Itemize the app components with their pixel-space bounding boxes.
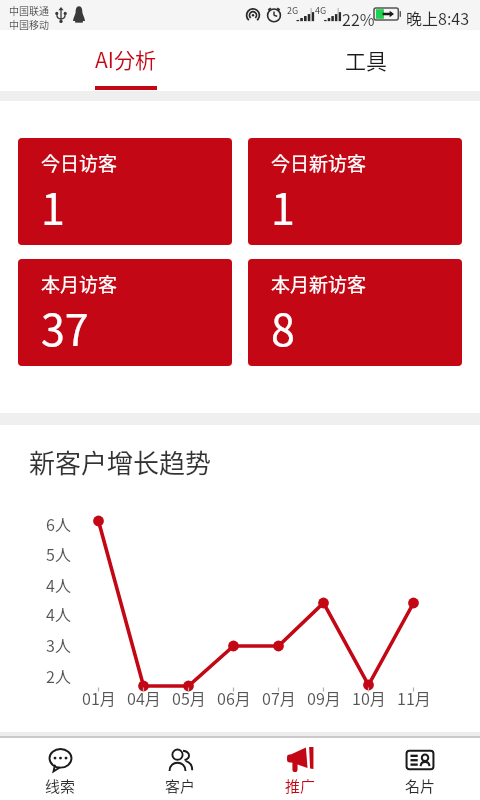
button[interactable]: 今日访客 (18, 138, 232, 245)
staticText: 客户 (165, 775, 196, 797)
staticText: 10月 (352, 686, 386, 709)
staticText: 线索 (45, 775, 76, 797)
staticText: 09月 (307, 686, 341, 709)
staticText: 01月 (82, 686, 116, 709)
staticText: 推广 (285, 775, 316, 797)
staticText: 本月新访客 (271, 270, 367, 298)
button[interactable]: 线索 (0, 738, 120, 800)
staticText: 6人 (46, 512, 71, 535)
button[interactable]: 本月新访客 (248, 259, 462, 366)
staticText: 22% (342, 7, 375, 30)
button[interactable]: 本月访客 (18, 259, 232, 366)
staticText: 新客户增长趋势 (29, 443, 212, 481)
staticText: 中国联通 (9, 3, 49, 17)
staticText: 11月 (397, 686, 431, 709)
staticText: 4人 (46, 602, 71, 625)
staticText: 1 (41, 175, 65, 237)
staticText: 04月 (127, 686, 161, 709)
staticText: 4G (315, 4, 327, 17)
staticText: 本月访客 (41, 270, 118, 298)
button[interactable]: 今日新访客 (248, 138, 462, 245)
staticText: 今日新访客 (271, 149, 367, 177)
staticText: 2G (287, 4, 299, 17)
staticText: 8 (271, 296, 295, 358)
staticText: AI分析 (95, 44, 156, 74)
button[interactable]: 工具 (240, 30, 480, 91)
staticText: 3人 (46, 633, 71, 656)
staticText: 今日访客 (41, 149, 118, 177)
button[interactable]: 名片 (360, 738, 480, 800)
staticText: 工具 (345, 45, 387, 75)
staticText: 2人 (46, 664, 71, 687)
staticText: 37 (41, 296, 89, 358)
staticText: 07月 (262, 686, 296, 709)
staticText: 05月 (172, 686, 206, 709)
staticText: 1 (271, 175, 295, 237)
button[interactable]: 客户 (120, 738, 240, 800)
button[interactable]: AI分析 (0, 30, 240, 91)
staticText: 晚上8:43 (406, 6, 470, 29)
staticText: 中国移动 (9, 17, 49, 31)
staticText: 5人 (46, 542, 71, 565)
staticText: 06月 (217, 686, 251, 709)
staticText: 4人 (46, 573, 71, 596)
staticText: 名片 (405, 775, 436, 797)
button[interactable]: 推广 (240, 738, 360, 800)
